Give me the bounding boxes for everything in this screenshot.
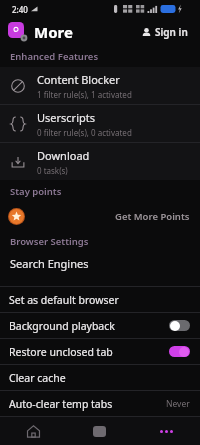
staticText: Download — [37, 148, 90, 163]
staticText: Enhanced Features — [10, 50, 99, 63]
staticText: 1 filter rule(s), 1 activated — [37, 89, 132, 100]
staticText: Get More Points — [115, 210, 190, 223]
staticText: Search Engines — [10, 256, 89, 271]
button[interactable]: Get More Points — [0, 202, 200, 230]
staticText: Stay points — [10, 185, 62, 198]
button[interactable]: Restore unclosed tab — [0, 339, 200, 364]
staticText: Clear cache — [9, 371, 66, 385]
staticText: 0 task(s) — [37, 165, 68, 176]
button[interactable]: Auto-clear temp tabs — [0, 391, 200, 416]
staticText: Userscripts — [37, 110, 95, 125]
staticText: Restore unclosed tab — [9, 345, 113, 359]
staticText: Never — [166, 398, 190, 410]
button[interactable]: Set as default browser — [0, 287, 200, 312]
staticText: Set as default browser — [9, 293, 119, 307]
staticText: Sign in — [155, 25, 188, 39]
button[interactable]: Home — [0, 417, 66, 445]
button[interactable]: Clear cache — [0, 365, 200, 390]
button[interactable]: Tabs — [66, 417, 133, 445]
staticText: Auto-clear temp tabs — [9, 397, 113, 411]
staticText: More — [34, 22, 73, 42]
button[interactable]: Content Blocker — [0, 67, 200, 104]
staticText: Browser Settings — [10, 235, 89, 248]
button[interactable]: More — [133, 417, 200, 445]
button[interactable]: Background playback — [0, 313, 200, 338]
button[interactable]: Sign in — [137, 22, 192, 42]
button[interactable]: Userscripts — [0, 105, 200, 142]
staticText: 2:40 — [12, 4, 28, 15]
staticText: 0 filter rule(s), 0 activated — [37, 127, 132, 138]
button[interactable]: Download — [0, 143, 200, 180]
button[interactable]: Search Engines — [0, 252, 200, 274]
staticText: Content Blocker — [37, 72, 120, 87]
staticText: Background playback — [9, 319, 115, 333]
